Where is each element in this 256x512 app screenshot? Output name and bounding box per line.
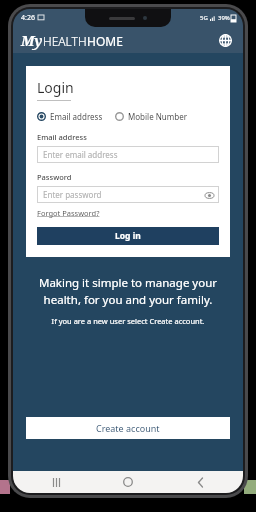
staticText: 5G [200,14,208,22]
staticText: My [21,31,43,50]
staticText: Enter email address [43,149,118,160]
staticText: Log in [115,230,141,242]
staticText: Email address [37,132,87,142]
button[interactable]: Home [117,471,139,493]
button[interactable]: Forgot Password? [37,208,100,218]
staticText: If you are a new user select Create acco… [13,316,243,326]
button[interactable]: Back [189,471,211,493]
button[interactable]: Create account [26,417,230,439]
button[interactable]: Email address [37,111,103,122]
button[interactable]: Recent apps [45,471,67,493]
button[interactable]: Show password [204,190,214,200]
staticText: HOME [87,33,123,49]
button[interactable]: Language [215,30,235,50]
staticText: Email address [50,111,103,122]
staticText: 4:26 [21,13,35,23]
button[interactable]: Enter password [37,186,219,203]
staticText: Create account [96,422,160,434]
staticText: Mobile Number [128,111,187,122]
staticText: Login [37,78,74,97]
staticText: Making it simple to manage your health, … [13,275,243,307]
staticText: Password [37,172,72,182]
button[interactable]: Log in [37,227,219,245]
button[interactable]: Mobile Number [115,111,187,122]
staticText: 39% [218,14,230,22]
button[interactable]: Enter email address [37,146,219,163]
staticText: Enter password [43,189,102,200]
staticText: HEALTH [43,33,87,49]
